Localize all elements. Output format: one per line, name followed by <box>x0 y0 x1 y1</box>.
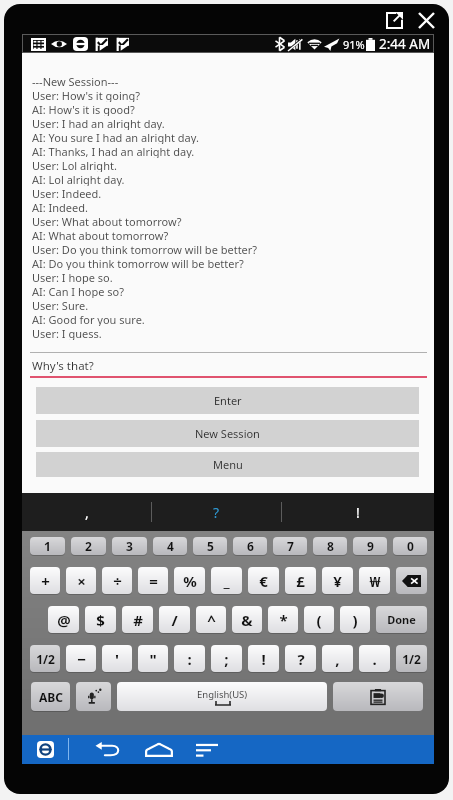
staticText: AI: Lol alright day. <box>32 172 125 186</box>
button[interactable]: ! <box>248 645 279 672</box>
staticText: " <box>149 649 157 669</box>
staticText: $ <box>96 610 105 630</box>
staticText: AI: How's it is good? <box>32 102 135 116</box>
staticText: AI: Good for you sure. <box>32 312 145 326</box>
staticText: User: Indeed. <box>32 186 102 200</box>
button[interactable]: Backspace <box>396 567 427 594</box>
button[interactable]: , <box>322 645 353 672</box>
button[interactable]: " <box>138 645 168 672</box>
button[interactable]: Open in new window <box>382 8 406 32</box>
button[interactable]: Clipboard <box>333 682 423 711</box>
button[interactable]: Back <box>93 738 123 761</box>
button[interactable]: ABC <box>31 682 70 711</box>
button[interactable]: Done <box>376 606 427 633</box>
staticText: − <box>77 649 86 669</box>
staticText: AI: Can I hope so? <box>32 284 124 298</box>
staticText: ÷ <box>113 571 122 591</box>
staticText: 3 <box>126 538 133 554</box>
button[interactable]: / <box>159 606 190 633</box>
button[interactable]: * <box>268 606 298 633</box>
button[interactable]: & <box>232 606 262 633</box>
staticText: English(US) <box>197 688 248 701</box>
button[interactable]: ÷ <box>102 567 132 594</box>
button[interactable]: ' <box>102 645 132 672</box>
button[interactable]: ^ <box>196 606 226 633</box>
button[interactable]: Voice input <box>76 682 111 711</box>
button[interactable]: English(US) <box>117 682 327 711</box>
staticText: 1/2 <box>402 651 421 667</box>
staticText: 9 <box>367 538 374 554</box>
button[interactable]: − <box>66 645 96 672</box>
button[interactable]: 2 <box>71 537 106 555</box>
staticText: User: I guess. <box>32 326 102 340</box>
button[interactable]: , <box>22 493 151 531</box>
button[interactable]: Menu <box>36 452 419 477</box>
button[interactable]: Enter <box>36 387 419 414</box>
button[interactable]: 6 <box>233 537 267 555</box>
button[interactable]: ; <box>211 645 242 672</box>
button[interactable]: $ <box>85 606 116 633</box>
button[interactable]: _ <box>211 567 242 594</box>
button[interactable]: Close <box>414 8 438 32</box>
button[interactable]: ( <box>304 606 334 633</box>
staticText: User: What about tomorrow? <box>32 214 182 228</box>
staticText: ! <box>356 503 360 522</box>
button[interactable]: New Session <box>36 420 419 447</box>
button[interactable]: = <box>138 567 168 594</box>
staticText: Menu <box>213 457 243 472</box>
button[interactable]: ¥ <box>322 567 353 594</box>
button[interactable]: £ <box>285 567 316 594</box>
button[interactable]: : <box>174 645 205 672</box>
button[interactable]: . <box>359 645 390 672</box>
button[interactable]: ? <box>285 645 316 672</box>
staticText: ? <box>213 503 220 522</box>
button[interactable]: ) <box>340 606 370 633</box>
staticText: AI: Indeed. <box>32 200 88 214</box>
button[interactable]: % <box>174 567 205 594</box>
button[interactable]: 5 <box>193 537 227 555</box>
button[interactable]: 8 <box>313 537 347 555</box>
button[interactable]: € <box>248 567 279 594</box>
button[interactable]: 0 <box>393 537 427 555</box>
button[interactable]: Recent apps <box>192 738 222 761</box>
staticText: 5 <box>207 538 214 554</box>
button[interactable]: × <box>66 567 96 594</box>
button[interactable]: 4 <box>153 537 187 555</box>
button[interactable]: ₩ <box>359 567 390 594</box>
staticText: ) <box>352 610 358 630</box>
staticText: . <box>372 649 377 669</box>
button[interactable]: @ <box>48 606 79 633</box>
button[interactable]: 1/2 <box>30 645 60 672</box>
staticText: + <box>41 571 50 591</box>
staticText: 91% <box>343 37 365 52</box>
staticText: % <box>183 571 197 591</box>
staticText: ABC <box>39 689 63 705</box>
staticText: ' <box>115 649 119 669</box>
button[interactable]: Home <box>140 738 178 761</box>
staticText: : <box>187 649 192 669</box>
button[interactable]: # <box>122 606 153 633</box>
staticText: User: I had an alright day. <box>32 116 165 130</box>
button[interactable]: Remote control <box>35 739 56 760</box>
staticText: AI: Do you think tomorrow will be better… <box>32 256 244 270</box>
button[interactable]: ? <box>152 493 281 531</box>
button[interactable]: ! <box>282 493 434 531</box>
staticText: ^ <box>207 610 216 630</box>
button[interactable]: 1/2 <box>396 645 427 672</box>
button[interactable]: + <box>30 567 60 594</box>
staticText: User: Sure. <box>32 298 89 312</box>
staticText: 8 <box>327 538 334 554</box>
button[interactable]: 7 <box>273 537 307 555</box>
staticText: ₩ <box>369 571 381 591</box>
staticText: & <box>241 610 253 630</box>
staticText: Done <box>387 612 416 627</box>
button[interactable]: 3 <box>112 537 147 555</box>
staticText: New Session <box>195 426 260 441</box>
staticText: AI: What about tomorrow? <box>32 228 169 242</box>
staticText: 2 <box>85 538 92 554</box>
button[interactable]: 1 <box>30 537 65 555</box>
staticText: ( <box>316 610 322 630</box>
staticText: 1 <box>44 538 51 554</box>
button[interactable]: 9 <box>353 537 387 555</box>
staticText: 2:44 AM <box>379 35 431 53</box>
